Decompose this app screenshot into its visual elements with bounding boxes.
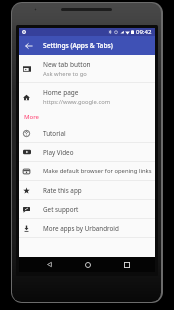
button[interactable]: Recent apps (114, 257, 139, 272)
staticText: Play Video (43, 148, 74, 157)
button[interactable]: Back (19, 36, 38, 55)
staticText: Get support (43, 205, 79, 214)
staticText: https://www.google.com (43, 98, 111, 106)
staticText: 09:42 (136, 28, 152, 36)
button[interactable]: Get support (19, 200, 155, 218)
button[interactable]: Back (37, 257, 62, 272)
staticText: Settings (Apps & Tabs) (43, 41, 113, 50)
staticText: Tutorial (43, 129, 66, 138)
button[interactable]: Rate this app (19, 181, 155, 199)
button[interactable]: Home page (19, 83, 155, 110)
button[interactable]: Play Video (19, 143, 155, 161)
staticText: New tab button (43, 60, 91, 69)
staticText: More (24, 113, 40, 121)
staticText: Make default browser for opening links (43, 167, 152, 175)
button[interactable]: Make default browser for opening links (19, 162, 155, 180)
button[interactable]: Tutorial (19, 124, 155, 142)
staticText: Rate this app (43, 186, 82, 195)
button[interactable]: More apps by Urbandroid (19, 219, 155, 237)
staticText: Ask where to go (43, 70, 87, 78)
staticText: Home page (43, 88, 79, 97)
staticText: More apps by Urbandroid (43, 224, 119, 233)
button[interactable]: Home (75, 257, 100, 272)
button[interactable]: New tab button (19, 55, 155, 82)
